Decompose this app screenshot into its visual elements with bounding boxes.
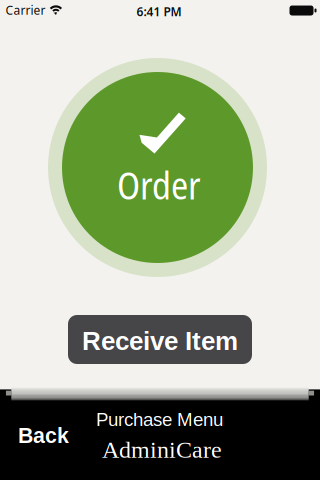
staticText: Purchase Menu: [96, 409, 223, 430]
staticText: Carrier: [5, 2, 45, 18]
staticText: Back: [18, 424, 69, 447]
button[interactable]: Back: [8, 416, 79, 455]
button[interactable]: Order: [48, 58, 267, 277]
staticText: AdminiCare: [102, 436, 222, 463]
staticText: 6:41 PM: [136, 4, 181, 19]
button[interactable]: Receive Item: [68, 315, 252, 364]
staticText: Receive Item: [82, 326, 238, 355]
staticText: Order: [117, 160, 201, 210]
